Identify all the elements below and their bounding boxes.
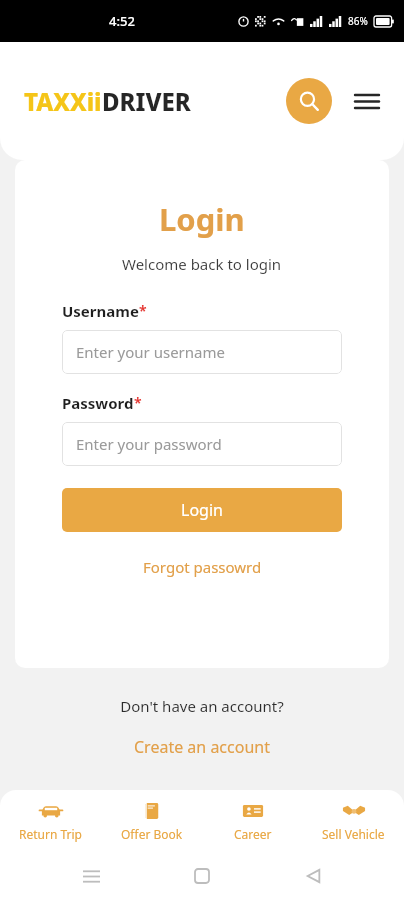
staticText: 86% [348,14,368,28]
staticText: Sell Vehicle [322,826,385,842]
staticText: Offer Book [121,826,183,842]
button[interactable]: Menu [350,84,384,118]
button[interactable]: Recents [71,856,111,896]
button[interactable]: Enter your username [62,330,342,374]
staticText: Career [234,826,272,842]
button[interactable]: Sell Vehicle [303,790,404,852]
staticText: * [134,393,142,412]
staticText: Don't have an account? [120,696,284,716]
staticText: 4:52 [109,12,135,30]
staticText: Return Trip [19,826,82,842]
button[interactable]: Career [202,790,303,852]
button[interactable]: Return Trip [0,790,101,852]
staticText: Password [62,393,134,413]
staticText: Login [181,499,223,521]
staticText: Welcome back to login [122,254,282,274]
staticText: Create an account [134,736,270,758]
button[interactable]: Forgot passowrd [139,553,266,581]
button[interactable]: Login [62,488,342,532]
staticText: Forgot passowrd [143,557,262,577]
staticText: Login [159,198,245,240]
button[interactable]: Home [182,856,222,896]
staticText: Enter your password [76,434,222,454]
button[interactable]: Enter your password [62,422,342,466]
button[interactable]: Offer Book [101,790,202,852]
button[interactable]: Create an account [130,732,274,762]
staticText: TAXXii [24,85,102,118]
button[interactable]: Back [293,856,333,896]
staticText: Enter your username [76,342,225,362]
staticText: DRIVER [102,85,191,118]
button[interactable]: Search [286,78,332,124]
staticText: Username [62,301,139,321]
staticText: * [139,301,147,320]
